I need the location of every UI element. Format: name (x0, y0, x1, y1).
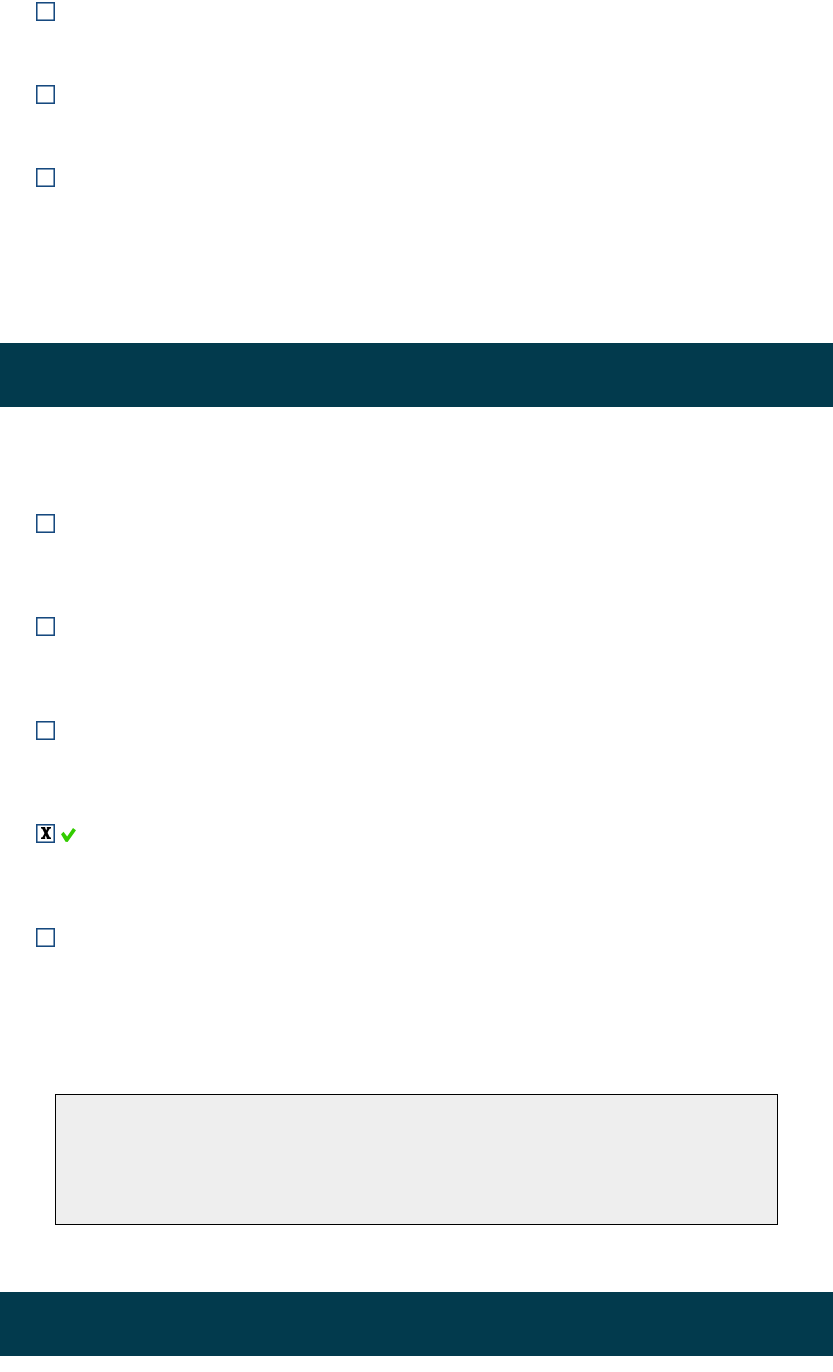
button[interactable]: Option 6 (36, 721, 55, 740)
other: Verified (61, 828, 76, 842)
button[interactable]: Option 5 (36, 617, 55, 636)
button[interactable]: Option 1 (36, 2, 55, 21)
button[interactable]: Option 8 (36, 928, 55, 947)
button[interactable]: Option 4 (36, 514, 55, 533)
button[interactable]: Option 2 (36, 85, 55, 104)
button[interactable]: Option 7, selected (36, 824, 55, 843)
button[interactable]: Comments field (55, 1094, 778, 1225)
button[interactable]: Option 3 (36, 168, 55, 187)
